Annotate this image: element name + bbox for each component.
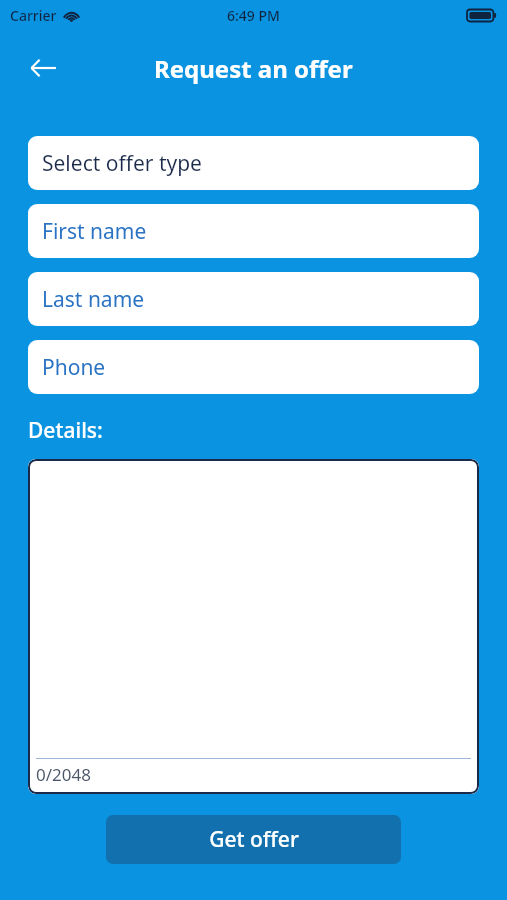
staticText: Phone [42,353,106,382]
button[interactable]: Back [22,47,64,89]
staticText: 0/2048 [36,763,91,786]
staticText: Last name [42,285,145,314]
staticText: Details: [28,416,103,445]
staticText: Carrier [10,6,57,25]
button[interactable]: Select offer type [28,136,479,190]
staticText: Select offer type [42,149,202,178]
staticText: Get offer [209,825,299,854]
staticText: First name [42,217,147,246]
staticText: Request an offer [154,52,353,85]
button[interactable]: 0/2048 [28,459,479,794]
button[interactable]: Phone [28,340,479,394]
staticText: 6:49 PM [227,6,280,25]
button[interactable]: Get offer [106,815,401,864]
button[interactable]: First name [28,204,479,258]
button[interactable]: Last name [28,272,479,326]
